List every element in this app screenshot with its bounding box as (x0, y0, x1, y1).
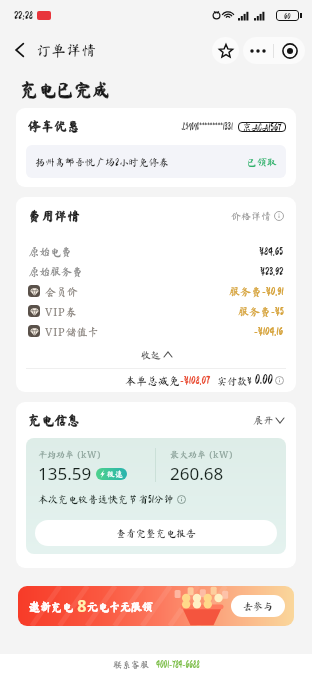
staticText: 已领取 (247, 157, 277, 167)
staticText: 邀新充电 (29, 601, 73, 612)
staticText: 会员价 (45, 286, 78, 297)
staticText: 0.00 (252, 374, 273, 387)
staticText: 查看完整充电报告 (116, 528, 196, 538)
staticText: 价格详情 (231, 211, 271, 221)
staticText: LINN*********1331 (182, 122, 233, 131)
staticText: 联系客服 (113, 660, 150, 669)
button[interactable]: 邀新充电 (18, 586, 294, 626)
button[interactable]: Favorite (212, 37, 239, 64)
button[interactable]: 联系客服 (113, 660, 200, 669)
staticText: 停车优惠 (28, 120, 81, 133)
staticText: -¥108.07 (180, 375, 210, 386)
staticText: 订单详情 (36, 43, 97, 58)
staticText: 费用详情 (28, 210, 81, 223)
staticText: 60 (284, 12, 291, 20)
staticText: 实付款¥ (217, 376, 252, 386)
staticText: 元电卡无限领 (87, 601, 153, 612)
staticText: 最大功率 (kW) (170, 448, 234, 460)
staticText: 原始服务费 (28, 266, 83, 277)
staticText: VIP储值卡 (45, 324, 99, 339)
button[interactable]: 扬州高邮吾悦广场2小时免停券 (26, 145, 286, 178)
staticText: 本次充电较普通快充节省51分钟 (38, 494, 174, 504)
staticText: ¥84.65 (259, 246, 284, 257)
button[interactable]: 去参与 (231, 595, 285, 617)
staticText: 260.68 (170, 462, 224, 485)
button[interactable]: Back (6, 36, 34, 64)
staticText: 扬州高邮吾悦广场2小时免停券 (35, 157, 169, 167)
button[interactable]: Close (274, 37, 305, 64)
staticText: 费用详情 (28, 210, 81, 223)
staticText: 极速 (107, 470, 123, 478)
button[interactable]: 查看完整充电报告 (35, 520, 277, 546)
staticText: 元电卡无限领 (87, 601, 153, 612)
staticText: VIP券 (45, 304, 77, 319)
staticText: ¥23.92 (260, 266, 284, 277)
staticText: 本单总减免 (125, 375, 180, 386)
staticText: -¥104.16 (254, 326, 284, 337)
staticText: 服务费-¥5 (238, 306, 284, 317)
staticText: 停车优惠 (28, 120, 81, 133)
button[interactable]: More options (243, 37, 273, 64)
staticText: 22:28 (14, 10, 33, 21)
staticText: 充电已完成 (20, 80, 110, 98)
staticText: 展开 (253, 415, 273, 425)
staticText: 去参与 (243, 601, 273, 611)
staticText: 邀新充电 (29, 601, 73, 612)
staticText: 平均功率 (kW) (38, 448, 102, 460)
staticText: 收起 (141, 350, 161, 360)
button[interactable]: 收起 (16, 341, 296, 368)
staticText: 充电已完成 (20, 80, 110, 98)
button[interactable]: 展开 (253, 415, 284, 425)
staticText: 服务费-¥0.91 (229, 286, 284, 297)
staticText: 4001-784-6688 (156, 660, 200, 669)
staticText: 135.59 (38, 462, 92, 485)
staticText: 原始电费 (28, 246, 72, 257)
staticText: 充电信息 (28, 414, 81, 427)
button[interactable]: 价格详情 (231, 211, 284, 221)
staticText: 充电信息 (28, 414, 81, 427)
staticText: 8 (73, 595, 87, 617)
staticText: 京ACA1567 (242, 122, 282, 132)
